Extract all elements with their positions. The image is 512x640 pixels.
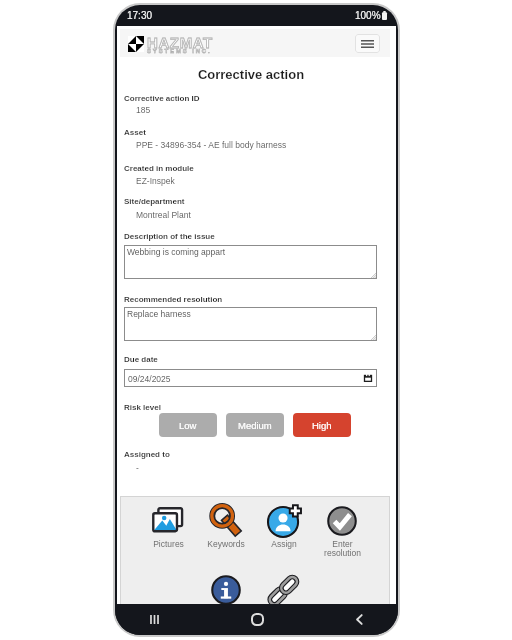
button[interactable]: Information	[197, 574, 255, 616]
staticText: Montreal Plant	[136, 210, 191, 219]
staticText: Recommended resolution	[124, 295, 223, 304]
button[interactable]: Recent apps	[137, 604, 171, 635]
button[interactable]: Assign	[255, 505, 313, 560]
button[interactable]: Enter resolution	[313, 505, 371, 560]
staticText: Corrective action ID	[124, 94, 200, 103]
button[interactable]: Replace harness	[124, 307, 377, 341]
staticText: Pictures	[153, 539, 184, 548]
staticText: 185	[136, 105, 151, 114]
staticText: SYSTEMS INC.	[147, 48, 212, 55]
staticText: High	[312, 420, 332, 431]
staticText: Due date	[124, 355, 158, 364]
staticText: Risk level	[124, 403, 161, 412]
staticText: -	[136, 463, 139, 472]
staticText: Medium	[238, 420, 272, 431]
button[interactable]: Medium	[226, 413, 284, 437]
staticText: resolution	[324, 548, 361, 557]
staticText: Asset	[124, 128, 146, 137]
staticText: Description of the issue	[124, 232, 215, 241]
button[interactable]: 09/24/2025	[124, 369, 377, 387]
staticText: Assign	[271, 539, 297, 548]
button[interactable]: Home	[240, 604, 274, 635]
staticText: Created in module	[124, 164, 194, 173]
staticText: Keywords	[207, 539, 245, 548]
staticText: Corrective action	[117, 67, 385, 82]
button[interactable]: Keywords	[197, 505, 255, 560]
button[interactable]: Back	[342, 604, 376, 635]
staticText: SYSTEMS INC.	[147, 48, 212, 55]
button[interactable]: Links	[255, 574, 313, 616]
staticText: Site/department	[124, 197, 185, 206]
staticText: Enter	[332, 539, 353, 548]
staticText: Low	[179, 420, 197, 431]
button[interactable]: Webbing is coming appart	[124, 245, 377, 279]
staticText: HAZMAT	[147, 34, 213, 51]
staticText: Replace harness	[127, 309, 191, 318]
button[interactable]: Menu	[355, 34, 380, 53]
staticText: PPE - 34896-354 - AE full body harness	[136, 140, 287, 149]
staticText: EZ-Inspek	[136, 176, 175, 185]
button[interactable]: Pictures	[139, 505, 197, 560]
staticText: HAZMAT	[147, 34, 213, 51]
button[interactable]: High	[293, 413, 351, 437]
staticText: 17:30	[127, 10, 153, 21]
staticText: 09/24/2025	[128, 374, 171, 383]
staticText: 100%	[355, 10, 381, 21]
button[interactable]: Low	[159, 413, 217, 437]
staticText: Assigned to	[124, 450, 170, 459]
staticText: Webbing is coming appart	[127, 247, 226, 256]
